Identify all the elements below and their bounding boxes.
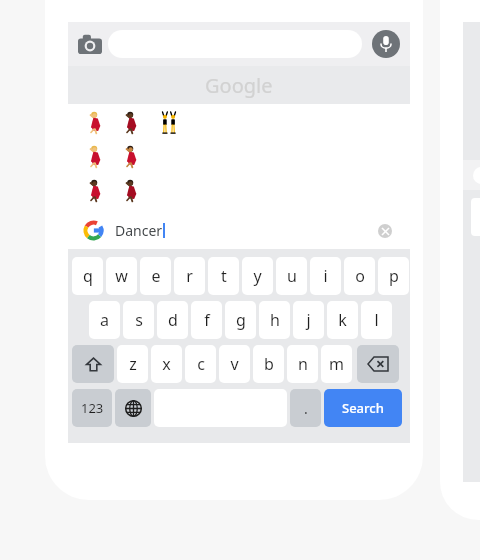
staticText: v	[230, 353, 239, 375]
staticText: c	[197, 353, 205, 375]
button[interactable]: o	[344, 257, 375, 295]
staticText: w	[115, 265, 128, 287]
button[interactable]	[118, 112, 146, 134]
button[interactable]: Shift	[72, 345, 114, 383]
button[interactable]: y	[242, 257, 273, 295]
button[interactable]: f	[191, 301, 222, 339]
button[interactable]	[82, 112, 110, 134]
button[interactable]: t	[208, 257, 239, 295]
button[interactable]: p	[378, 257, 409, 295]
staticText: n	[298, 353, 308, 375]
button[interactable]: Change input language	[115, 389, 151, 427]
staticText: b	[264, 353, 274, 375]
button[interactable]	[82, 146, 110, 168]
staticText: k	[338, 309, 347, 331]
button[interactable]	[82, 180, 110, 202]
staticText: Dancer	[115, 221, 163, 240]
button[interactable]: Voice search	[372, 30, 400, 58]
button[interactable]: Clear query	[378, 224, 392, 238]
button[interactable]	[154, 112, 184, 134]
button[interactable]: e	[140, 257, 171, 295]
button[interactable]	[118, 180, 146, 202]
button[interactable]: b	[253, 345, 284, 383]
staticText: .	[304, 399, 308, 418]
staticText: x	[162, 353, 171, 375]
staticText: 123	[81, 399, 104, 417]
button[interactable]: x	[151, 345, 182, 383]
button[interactable]: q	[72, 257, 103, 295]
button[interactable]: j	[293, 301, 324, 339]
staticText: m	[329, 353, 344, 375]
button[interactable]: Dancer	[74, 212, 404, 249]
button[interactable]: k	[327, 301, 358, 339]
button[interactable]: n	[287, 345, 318, 383]
staticText: a	[100, 309, 109, 331]
staticText: Google	[205, 72, 273, 99]
staticText: s	[135, 309, 143, 331]
staticText: i	[323, 265, 328, 287]
staticText: r	[186, 265, 193, 287]
staticText: j	[306, 309, 311, 331]
button[interactable]: Search	[324, 389, 402, 427]
button[interactable]: w	[106, 257, 137, 295]
button[interactable]: m	[321, 345, 352, 383]
staticText: q	[83, 265, 93, 287]
staticText: o	[355, 265, 365, 287]
button[interactable]: Search with camera	[76, 31, 104, 57]
staticText: Search	[342, 399, 384, 417]
staticText: f	[204, 309, 210, 331]
button[interactable]: .	[290, 389, 321, 427]
button[interactable]: g	[225, 301, 256, 339]
staticText: g	[236, 309, 246, 331]
button[interactable]	[118, 146, 146, 168]
button[interactable]: a	[89, 301, 120, 339]
staticText: e	[151, 265, 161, 287]
button[interactable]: z	[117, 345, 148, 383]
staticText: l	[374, 309, 379, 331]
staticText: p	[389, 265, 399, 287]
button[interactable]: u	[276, 257, 307, 295]
button[interactable]: r	[174, 257, 205, 295]
staticText: z	[129, 353, 137, 375]
staticText: y	[253, 265, 262, 287]
staticText: d	[168, 309, 178, 331]
button[interactable]: h	[259, 301, 290, 339]
staticText: h	[270, 309, 280, 331]
button[interactable]: v	[219, 345, 250, 383]
button[interactable]: s	[123, 301, 154, 339]
button[interactable]: l	[361, 301, 392, 339]
button[interactable]: d	[157, 301, 188, 339]
staticText: t	[221, 265, 227, 287]
button[interactable]: 123	[72, 389, 112, 427]
button[interactable]: c	[185, 345, 216, 383]
button[interactable]: i	[310, 257, 341, 295]
button[interactable]: Backspace	[357, 345, 399, 383]
staticText: u	[287, 265, 297, 287]
